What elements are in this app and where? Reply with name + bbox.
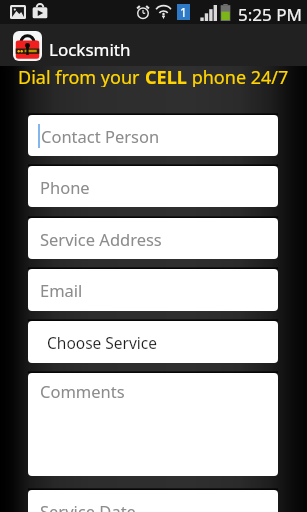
staticText: Email — [40, 279, 83, 301]
staticText: Service Date — [40, 500, 136, 512]
staticText: Locksmith — [49, 38, 131, 61]
staticText: Contact Person — [41, 125, 160, 147]
other: Gallery notification — [10, 5, 26, 19]
other: Battery — [220, 4, 231, 21]
staticText: CELL — [145, 65, 187, 87]
other: Alarm set — [135, 4, 151, 20]
button[interactable]: Email — [28, 269, 278, 311]
other: Play Store notification — [32, 3, 48, 19]
staticText: Choose Service — [47, 332, 158, 353]
staticText: Phone — [40, 176, 90, 198]
staticText: phone 24/7 — [187, 65, 289, 87]
button[interactable]: Choose Service — [28, 321, 278, 363]
staticText: Service Address — [40, 228, 162, 250]
staticText: 5:25 PM — [238, 3, 302, 26]
other: Cellular signal — [200, 5, 217, 21]
staticText: 1 — [180, 4, 187, 20]
other: Wi-Fi — [154, 4, 173, 20]
button[interactable]: Comments — [28, 373, 278, 476]
button[interactable]: Locksmith — [13, 31, 42, 61]
staticText: Dial from your — [18, 65, 145, 87]
staticText: Comments — [40, 380, 125, 402]
button[interactable]: Service Date — [28, 490, 278, 512]
button[interactable]: Phone — [28, 166, 278, 207]
button[interactable]: Contact Person — [28, 115, 278, 156]
button[interactable]: Service Address — [28, 218, 278, 259]
